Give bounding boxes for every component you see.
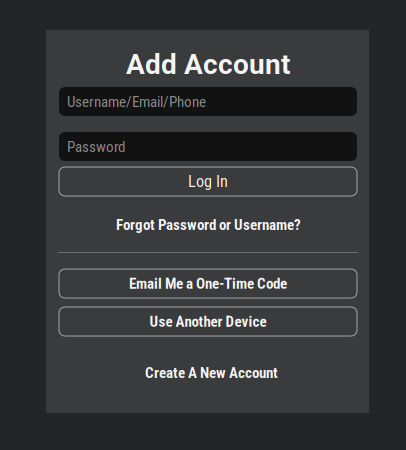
staticText: Username/Email/Phone [67,93,206,111]
staticText: Use Another Device [149,313,266,330]
button[interactable]: Email Me a One-Time Code [59,269,357,298]
button[interactable]: Use Another Device [59,307,357,336]
button[interactable]: Create A New Account [145,364,278,382]
staticText: Add Account [126,48,290,81]
staticText: Log In [188,172,228,191]
button[interactable]: Forgot Password or Username? [116,216,301,234]
staticText: Forgot Password or Username? [116,216,301,234]
staticText: Create A New Account [145,364,278,382]
button[interactable]: Log In [59,167,357,196]
staticText: Email Me a One-Time Code [129,275,287,292]
staticText: Password [67,138,125,156]
